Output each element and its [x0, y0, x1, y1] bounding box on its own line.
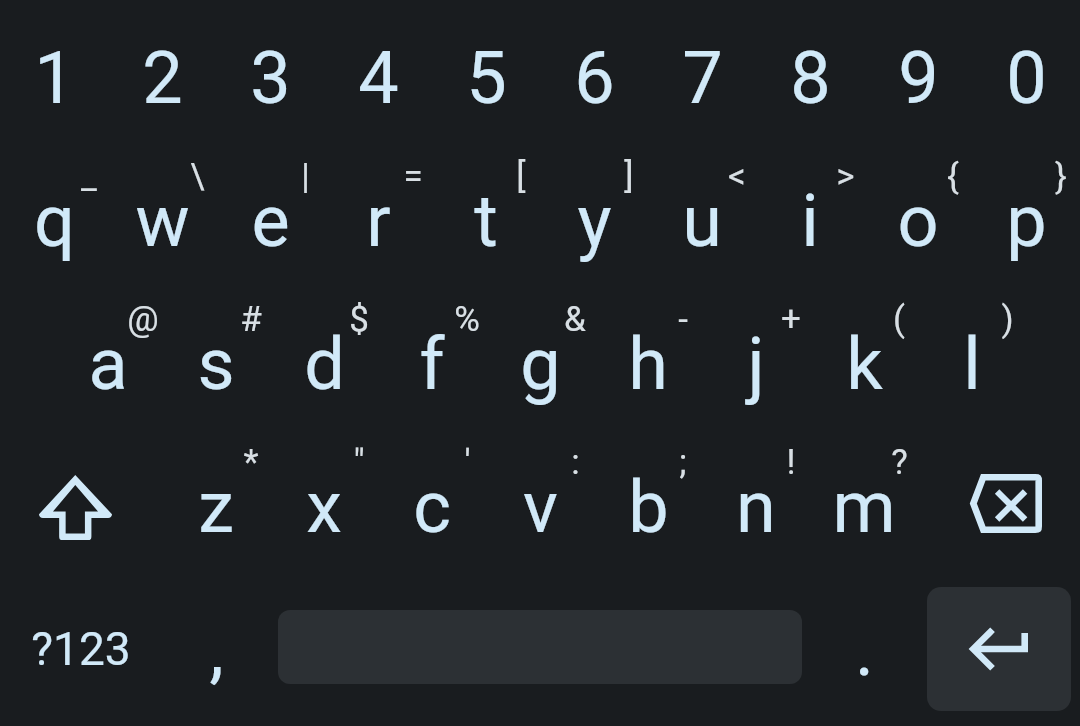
- staticText: q: [34, 179, 75, 263]
- button[interactable]: =: [324, 143, 432, 286]
- staticText: -: [678, 299, 688, 340]
- button[interactable]: Backspace: [918, 429, 1080, 572]
- staticText: z: [198, 465, 234, 549]
- staticText: #: [240, 299, 262, 340]
- button[interactable]: ): [918, 286, 1026, 429]
- staticText: v: [523, 465, 558, 549]
- button[interactable]: 6: [540, 0, 648, 143]
- staticText: 8: [790, 36, 831, 120]
- button[interactable]: |: [216, 143, 324, 286]
- staticText: t: [474, 179, 498, 263]
- button[interactable]: .: [810, 572, 918, 726]
- staticText: k: [846, 322, 883, 406]
- staticText: :: [571, 442, 580, 483]
- staticText: g: [520, 322, 561, 406]
- staticText: h: [628, 322, 668, 406]
- button[interactable]: 2: [108, 0, 216, 143]
- button[interactable]: @: [54, 286, 162, 429]
- staticText: l: [963, 322, 981, 406]
- button[interactable]: :: [486, 429, 594, 572]
- staticText: ?: [891, 442, 908, 483]
- staticText: 3: [250, 36, 291, 120]
- button[interactable]: >: [756, 143, 864, 286]
- staticText: @: [127, 299, 159, 340]
- button[interactable]: ?123: [0, 572, 162, 726]
- button[interactable]: <: [648, 143, 756, 286]
- button[interactable]: {: [864, 143, 972, 286]
- staticText: s: [197, 322, 235, 406]
- staticText: c: [413, 465, 451, 549]
- button[interactable]: ]: [540, 143, 648, 286]
- button[interactable]: ,: [162, 572, 270, 726]
- button[interactable]: #: [162, 286, 270, 429]
- staticText: {: [947, 156, 959, 197]
- button[interactable]: [: [432, 143, 540, 286]
- button[interactable]: ': [378, 429, 486, 572]
- staticText: d: [304, 322, 345, 406]
- staticText: 2: [142, 36, 183, 120]
- staticText: ;: [679, 442, 687, 483]
- staticText: !: [786, 442, 796, 483]
- staticText: ?123: [31, 622, 131, 676]
- staticText: b: [628, 465, 669, 549]
- button[interactable]: 4: [324, 0, 432, 143]
- staticText: x: [306, 465, 342, 549]
- button[interactable]: }: [972, 143, 1080, 286]
- staticText: ': [464, 442, 471, 483]
- staticText: f: [419, 322, 445, 406]
- staticText: _: [81, 156, 97, 197]
- button[interactable]: 0: [972, 0, 1080, 143]
- staticText: r: [366, 179, 391, 263]
- button[interactable]: !: [702, 429, 810, 572]
- staticText: %: [454, 299, 480, 340]
- button[interactable]: 7: [648, 0, 756, 143]
- button[interactable]: 9: [864, 0, 972, 143]
- staticText: m: [832, 465, 896, 549]
- staticText: w: [135, 179, 190, 263]
- button[interactable]: &: [486, 286, 594, 429]
- button[interactable]: 5: [432, 0, 540, 143]
- button[interactable]: -: [594, 286, 702, 429]
- staticText: a: [88, 322, 128, 406]
- staticText: p: [1006, 179, 1047, 263]
- staticText: j: [747, 322, 765, 406]
- staticText: <: [728, 156, 746, 197]
- staticText: u: [682, 179, 722, 263]
- staticText: [: [516, 156, 526, 197]
- button[interactable]: 3: [216, 0, 324, 143]
- button[interactable]: Enter: [927, 587, 1071, 711]
- button[interactable]: ": [270, 429, 378, 572]
- button[interactable]: ;: [594, 429, 702, 572]
- button[interactable]: 8: [756, 0, 864, 143]
- staticText: +: [781, 299, 801, 340]
- staticText: o: [897, 179, 939, 263]
- staticText: *: [243, 442, 259, 483]
- button[interactable]: $: [270, 286, 378, 429]
- staticText: >: [836, 156, 855, 197]
- staticText: =: [403, 156, 423, 197]
- button[interactable]: Shift: [0, 429, 162, 572]
- staticText: |: [301, 156, 310, 197]
- staticText: \: [190, 156, 205, 197]
- button[interactable]: *: [162, 429, 270, 572]
- staticText: 9: [898, 36, 939, 120]
- staticText: 0: [1006, 36, 1047, 120]
- staticText: }: [1055, 156, 1067, 197]
- staticText: &: [564, 299, 586, 340]
- staticText: (: [893, 299, 905, 340]
- staticText: $: [349, 299, 369, 340]
- button[interactable]: \: [108, 143, 216, 286]
- button[interactable]: _: [0, 143, 108, 286]
- button[interactable]: 1: [0, 0, 108, 143]
- button[interactable]: +: [702, 286, 810, 429]
- button[interactable]: %: [378, 286, 486, 429]
- button[interactable]: ?: [810, 429, 918, 572]
- staticText: i: [801, 179, 819, 263]
- staticText: y: [577, 179, 612, 263]
- staticText: 4: [358, 36, 399, 120]
- button[interactable]: (: [810, 286, 918, 429]
- staticText: 7: [682, 36, 723, 120]
- staticText: 5: [466, 36, 507, 120]
- staticText: ,: [209, 608, 224, 692]
